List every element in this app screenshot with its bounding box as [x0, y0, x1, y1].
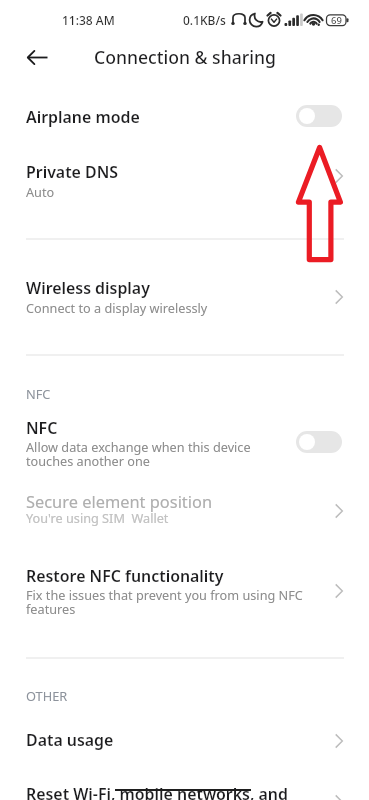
staticText: Connection & sharing [94, 45, 276, 69]
staticText: 69 [331, 14, 342, 27]
button[interactable]: Private DNS [0, 147, 369, 205]
staticText: Reset Wi-Fi, mobile networks, and [26, 783, 288, 800]
button[interactable]: Reset Wi-Fi, mobile networks, and [0, 774, 369, 800]
staticText: Data usage [26, 729, 114, 751]
staticText: OTHER [26, 687, 68, 704]
staticText: features [26, 600, 76, 617]
button[interactable]: Secure element position [0, 482, 369, 534]
staticText: Auto [26, 183, 55, 200]
button[interactable]: Data usage [0, 722, 369, 770]
button[interactable]: Toggle [296, 431, 342, 453]
staticText: Secure element position [26, 490, 213, 512]
staticText: touches another one [26, 452, 150, 469]
staticText: NFC [26, 385, 51, 402]
button[interactable]: Wireless display [0, 264, 369, 322]
button[interactable]: Toggle [296, 105, 342, 127]
staticText: 0.1KB/s [183, 12, 226, 28]
staticText: Fix the issues that prevent you from usi… [26, 586, 303, 603]
button[interactable]: NFC [0, 408, 369, 478]
staticText: Wireless display [26, 277, 150, 299]
staticText: Private DNS [26, 161, 119, 183]
staticText: Restore NFC functionality [26, 565, 224, 587]
button[interactable]: Restore NFC functionality [0, 557, 369, 627]
staticText: Connect to a display wirelessly [26, 299, 208, 316]
staticText: 11:38 AM [62, 12, 115, 28]
button[interactable]: Back [21, 43, 51, 73]
staticText: NFC [26, 417, 58, 439]
staticText: Allow data exchange when this device [26, 438, 251, 455]
staticText: You're using SIM Wallet [26, 509, 169, 526]
button[interactable]: Airplane mode [0, 97, 369, 147]
staticText: Airplane mode [26, 106, 140, 128]
